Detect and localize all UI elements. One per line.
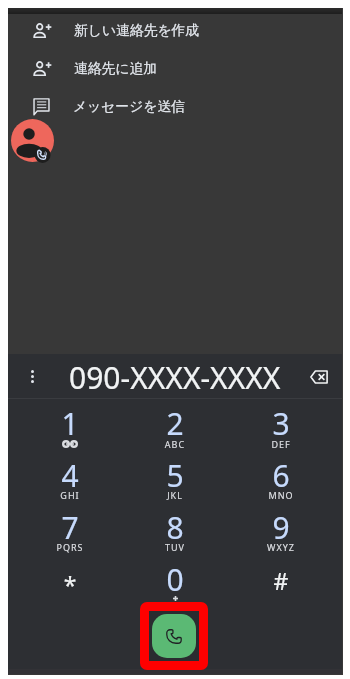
button[interactable]	[129, 400, 221, 450]
staticText: 3	[261, 403, 301, 441]
button[interactable]	[24, 451, 116, 501]
staticText: PQRS	[45, 541, 95, 553]
staticText: 0	[155, 559, 195, 597]
staticText: TUV	[150, 541, 200, 553]
staticText: GHI	[45, 489, 95, 501]
button[interactable]	[24, 503, 116, 553]
button[interactable]: Call	[152, 614, 196, 658]
staticText: 7	[50, 507, 90, 545]
staticText: 連絡先に追加	[74, 60, 158, 77]
button[interactable]: More options	[16, 354, 48, 399]
staticText: JKL	[150, 489, 200, 501]
button[interactable]	[235, 400, 327, 450]
button[interactable]	[24, 400, 116, 450]
button[interactable]	[129, 556, 221, 606]
staticText: *	[50, 569, 90, 600]
staticText: 9	[261, 507, 301, 545]
staticText: 1	[50, 403, 90, 441]
staticText: #	[261, 565, 301, 596]
staticText: 8	[155, 507, 195, 545]
staticText: 090-XXXX-XXXX	[69, 357, 281, 398]
button[interactable]	[235, 503, 327, 553]
staticText: 4	[50, 455, 90, 493]
staticText: WXYZ	[256, 541, 306, 553]
staticText: 新しい連絡先を作成	[74, 22, 200, 39]
button[interactable]: Backspace	[303, 354, 335, 399]
button[interactable]	[24, 556, 116, 606]
button[interactable]	[129, 503, 221, 553]
button[interactable]	[235, 556, 327, 606]
button[interactable]	[129, 451, 221, 501]
staticText: ABC	[150, 438, 200, 450]
staticText: メッセージを送信	[73, 98, 185, 115]
staticText: MNO	[256, 489, 306, 501]
staticText: 2	[155, 403, 195, 441]
button[interactable]: 連絡先に追加	[8, 50, 342, 86]
staticText: 6	[261, 455, 301, 493]
staticText: DEF	[256, 438, 306, 450]
staticText: 5	[155, 455, 195, 493]
button[interactable]: 新しい連絡先を作成	[8, 12, 342, 48]
button[interactable]: メッセージを送信	[8, 88, 342, 124]
button[interactable]	[235, 451, 327, 501]
